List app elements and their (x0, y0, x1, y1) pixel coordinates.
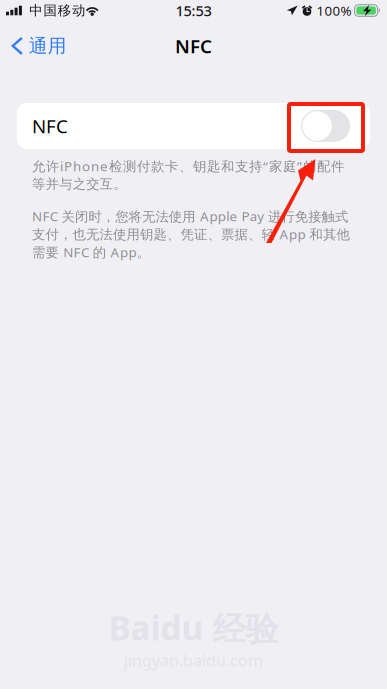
staticText: NFC 关闭时，您将无法使用 Apple Pay 进行免接触式 (32, 207, 348, 225)
staticText: Baidu 经验 (108, 605, 278, 650)
staticText: 等并与之交互。 (32, 176, 126, 192)
staticText: 需要 NFC 的 App。 (32, 243, 150, 261)
button[interactable]: 通用 (0, 27, 75, 64)
staticText: 100% (317, 2, 352, 19)
staticText: 通用 (29, 34, 67, 57)
staticText: 支付，也无法使用钥匙、凭证、票据、轻 App 和其他 (32, 225, 349, 243)
staticText: NFC (32, 114, 68, 138)
staticText: 中国移动 (29, 2, 85, 19)
staticText: NFC (175, 34, 212, 58)
staticText: jingyan.baidu.com (124, 650, 263, 671)
button[interactable]: NFC 开关 (301, 110, 350, 142)
staticText: 15:53 (175, 1, 211, 20)
staticText: 允许iPhone检测付款卡、钥匙和支持“家庭”的配件 (32, 157, 344, 175)
